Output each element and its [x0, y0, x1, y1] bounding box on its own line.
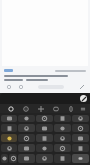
button[interactable]: Emoji 8	[36, 124, 53, 132]
button[interactable]: Symbols	[33, 104, 48, 113]
button[interactable]: More	[78, 104, 87, 113]
button[interactable]: Emoji 19	[54, 144, 71, 152]
button[interactable]: Emoji 1	[1, 115, 17, 122]
button[interactable]: Emoji 14	[54, 134, 71, 142]
button[interactable]: Emoji 6	[1, 124, 17, 132]
button[interactable]: Like	[16, 84, 26, 90]
button[interactable]: Reaction	[4, 84, 14, 90]
button[interactable]: Emoji 15	[72, 134, 89, 142]
button[interactable]: Emoji 18	[36, 144, 53, 152]
button[interactable]: Emoji 16	[1, 144, 17, 152]
button[interactable]	[4, 69, 13, 72]
button[interactable]: Recent	[3, 104, 18, 113]
button[interactable]: Symbols	[9, 154, 17, 163]
button[interactable]: Emoji 4	[54, 115, 71, 122]
button[interactable]: Send	[77, 84, 86, 90]
button[interactable]: Emoji 13	[36, 134, 53, 142]
button[interactable]: Backspace	[54, 154, 71, 163]
button[interactable]: Sticker	[36, 154, 53, 163]
button[interactable]: Smileys	[18, 104, 33, 113]
button[interactable]: Emoji 3	[36, 115, 53, 122]
button[interactable]: Emoji 9	[54, 124, 71, 132]
button[interactable]: Space	[18, 154, 35, 163]
button[interactable]: Emoji 5	[72, 115, 89, 122]
button[interactable]: Enter	[72, 154, 89, 163]
button[interactable]: Edit	[80, 95, 87, 102]
button[interactable]: Flags	[63, 104, 78, 113]
button[interactable]: ABC	[1, 154, 8, 163]
button[interactable]: Objects	[48, 104, 63, 113]
button[interactable]: Emoji 11	[1, 134, 17, 142]
button[interactable]: Emoji 10	[72, 124, 89, 132]
button[interactable]: Emoji 20	[72, 144, 89, 152]
button[interactable]: Emoji 12	[18, 134, 35, 142]
button[interactable]: Emoji 7	[18, 124, 35, 132]
button[interactable]: Emoji 2	[18, 115, 35, 122]
button[interactable]: Emoji 17	[18, 144, 35, 152]
